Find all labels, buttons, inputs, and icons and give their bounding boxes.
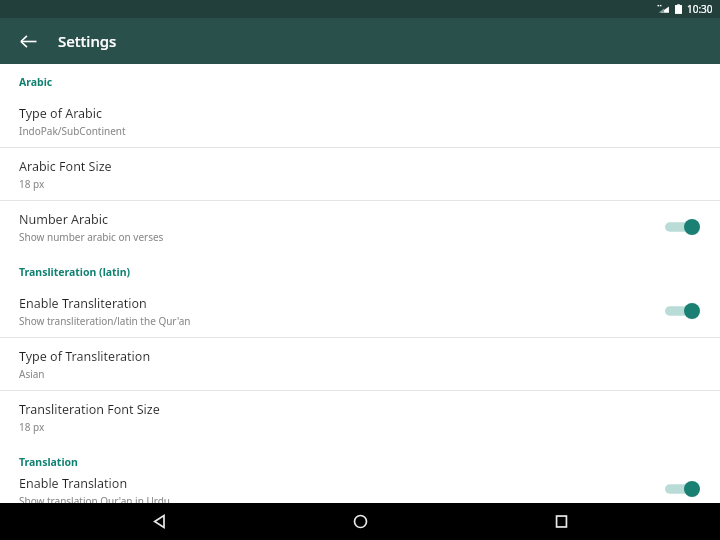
- staticText: IndoPak/SubContinent: [19, 124, 126, 138]
- staticText: 18 px: [19, 177, 45, 191]
- button[interactable]: Toggle: [663, 213, 703, 241]
- button[interactable]: Transliteration Font Size: [0, 391, 720, 443]
- button[interactable]: Enable Translation: [0, 475, 720, 503]
- staticText: Transliteration (latin): [19, 265, 131, 279]
- button[interactable]: Toggle: [663, 475, 703, 503]
- button[interactable]: Number Arabic: [0, 201, 720, 253]
- button[interactable]: Arabic Font Size: [0, 148, 720, 200]
- button[interactable]: Recent apps: [539, 503, 583, 540]
- staticText: Type of Arabic: [19, 105, 103, 122]
- button[interactable]: Toggle: [663, 297, 703, 325]
- staticText: Translation: [19, 455, 78, 469]
- staticText: 10:30: [687, 2, 713, 16]
- staticText: Number Arabic: [19, 211, 108, 228]
- staticText: Type of Transliteration: [19, 348, 151, 365]
- staticText: Enable Translation: [19, 475, 128, 492]
- staticText: Transliteration Font Size: [19, 401, 160, 418]
- staticText: Enable Transliteration: [19, 295, 147, 312]
- staticText: Show number arabic on verses: [19, 230, 164, 244]
- button[interactable]: Type of Transliteration: [0, 338, 720, 390]
- button[interactable]: Home: [338, 503, 382, 540]
- staticText: Show transliteration/latin the Qur'an: [19, 314, 191, 328]
- button[interactable]: Back: [10, 23, 46, 59]
- staticText: Settings: [58, 31, 117, 51]
- button[interactable]: Enable Transliteration: [0, 285, 720, 337]
- staticText: Arabic: [19, 75, 53, 89]
- staticText: Arabic Font Size: [19, 158, 112, 175]
- button[interactable]: Back: [137, 503, 181, 540]
- staticText: 18 px: [19, 420, 45, 434]
- staticText: Show translation Qur'an in Urdu: [19, 494, 170, 503]
- staticText: Asian: [19, 367, 45, 381]
- button[interactable]: Type of Arabic: [0, 95, 720, 147]
